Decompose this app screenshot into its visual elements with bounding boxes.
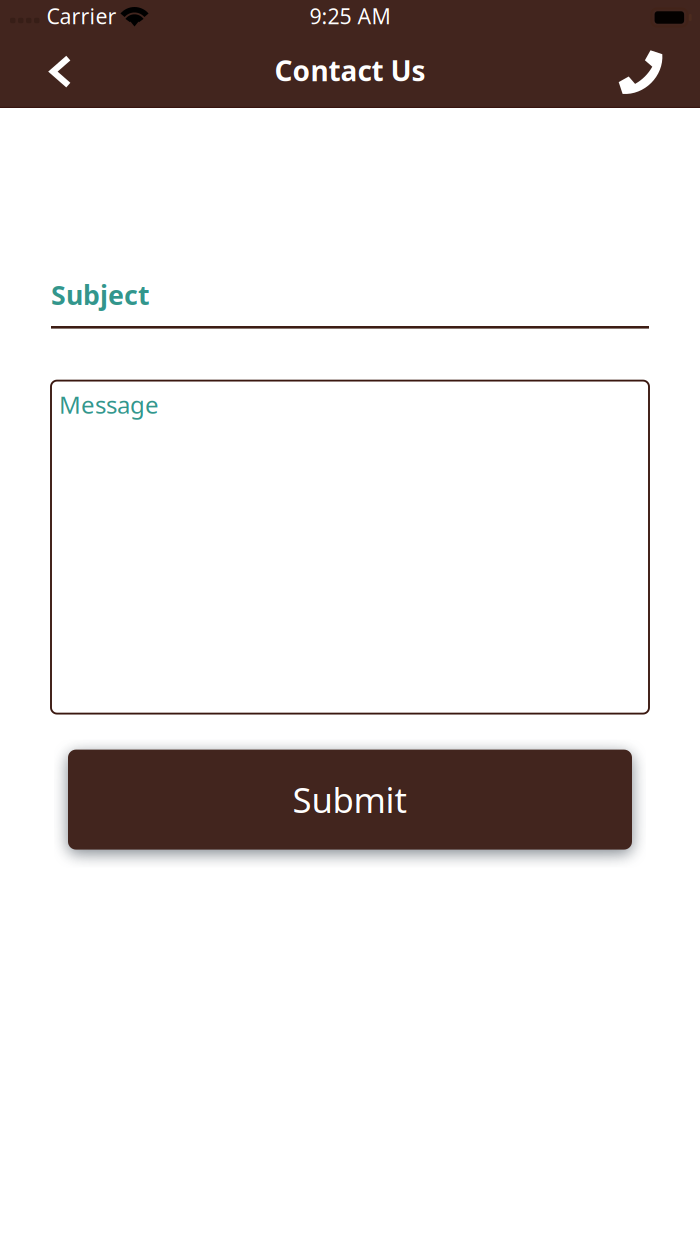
staticText: Carrier (46, 2, 116, 30)
button[interactable]: Call (594, 35, 700, 106)
staticText: Subject (51, 277, 150, 312)
staticText: Contact Us (274, 52, 425, 89)
button[interactable]: Submit (68, 750, 632, 850)
staticText: Submit (292, 777, 407, 823)
staticText: Message (59, 389, 159, 420)
button[interactable]: Back (0, 35, 106, 106)
staticText: 9:25 AM (309, 2, 390, 30)
